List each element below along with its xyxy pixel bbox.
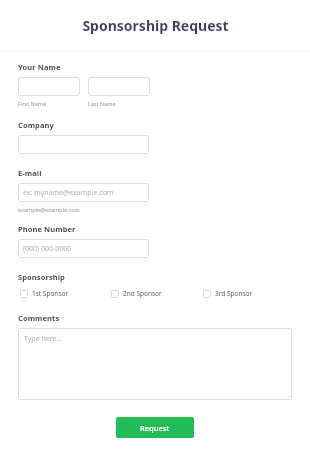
staticText: First Name [18, 100, 47, 107]
staticText: E-mail [18, 168, 42, 178]
staticText: ex: myname@example.com [23, 188, 114, 198]
staticText: Last Name [88, 100, 116, 107]
button[interactable]: 1st Sponsor [20, 289, 69, 298]
button[interactable] [88, 77, 150, 96]
button[interactable]: (000) 000-0000 [18, 239, 149, 258]
staticText: Sponsorship Request [82, 16, 229, 35]
button[interactable]: 2nd Sponsor [111, 289, 162, 298]
staticText: 1st Sponsor [32, 289, 69, 298]
staticText: 2nd Sponsor [123, 289, 162, 298]
staticText: example@example.com [18, 206, 80, 213]
button[interactable] [18, 135, 149, 154]
button[interactable]: Type here... [18, 328, 292, 400]
button[interactable]: Request [116, 417, 194, 438]
staticText: Comments [18, 313, 60, 323]
staticText: 3rd Sponsor [215, 289, 253, 298]
staticText: Your Name [18, 62, 61, 72]
staticText: (000) 000-0000 [23, 244, 72, 254]
other: Resize [285, 393, 290, 398]
staticText: Company [18, 120, 54, 130]
staticText: Type here... [24, 334, 62, 344]
button[interactable]: 3rd Sponsor [203, 289, 253, 298]
staticText: Sponsorship [18, 272, 65, 282]
staticText: Phone Number [18, 224, 76, 234]
staticText: Request [140, 423, 170, 433]
button[interactable]: ex: myname@example.com [18, 183, 149, 202]
button[interactable] [18, 77, 80, 96]
